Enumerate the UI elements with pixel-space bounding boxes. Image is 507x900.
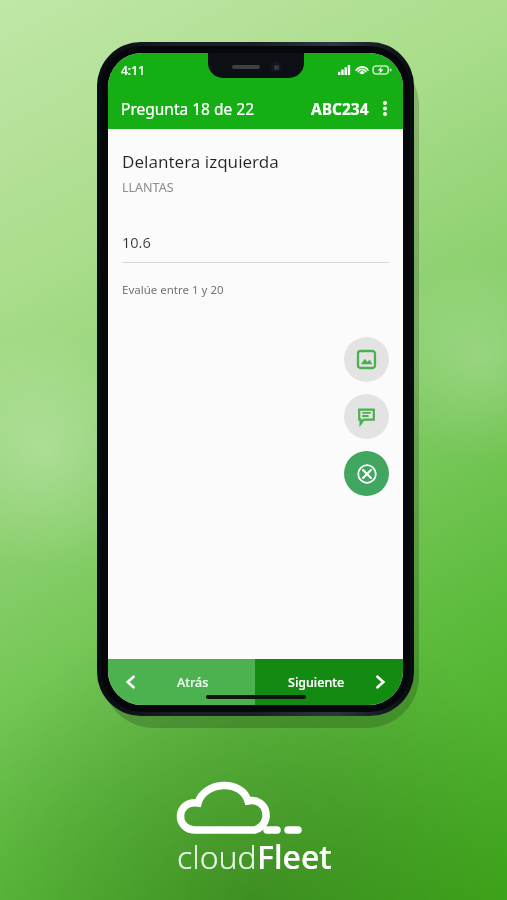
staticText: Siguiente bbox=[288, 674, 345, 691]
button[interactable]: Siguiente bbox=[255, 659, 403, 705]
button[interactable]: Attach photo bbox=[344, 337, 389, 382]
button[interactable]: Not applicable bbox=[344, 451, 389, 496]
staticText: 4:11 bbox=[121, 62, 145, 78]
staticText: Fleet bbox=[257, 835, 332, 879]
staticText: Evalúe entre 1 y 20 bbox=[122, 282, 224, 298]
button[interactable]: More options bbox=[369, 93, 400, 124]
staticText: LLANTAS bbox=[122, 179, 174, 196]
button[interactable]: 10.6 bbox=[122, 232, 389, 263]
staticText: 10.6 bbox=[122, 232, 151, 252]
staticText: cloud bbox=[177, 835, 257, 879]
button[interactable]: Add comment bbox=[344, 394, 389, 439]
staticText: ABC234 bbox=[311, 98, 369, 119]
staticText: Delantera izquierda bbox=[122, 150, 279, 173]
button[interactable]: Atrás bbox=[108, 659, 255, 705]
staticText: Pregunta 18 de 22 bbox=[121, 98, 255, 119]
staticText: Atrás bbox=[177, 674, 209, 691]
